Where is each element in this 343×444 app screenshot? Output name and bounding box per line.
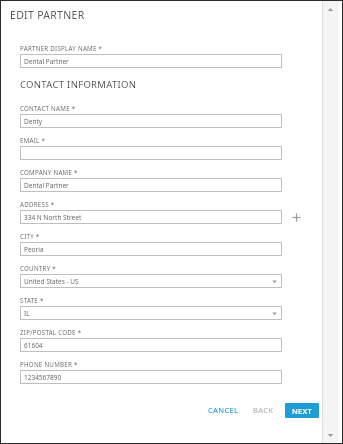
button[interactable]: 334 N North Street — [20, 210, 282, 224]
button[interactable]: Peoria — [20, 242, 282, 256]
button[interactable]: Dental Partner — [20, 178, 282, 192]
button[interactable]: Scroll down — [322, 427, 338, 443]
button[interactable]: IL — [20, 306, 282, 320]
staticText: STATE * — [20, 296, 44, 304]
staticText: COMPANY NAME * — [20, 168, 78, 176]
staticText: CONTACT NAME * — [20, 104, 76, 112]
staticText: Denty — [24, 117, 43, 126]
staticText: NEXT — [292, 406, 312, 416]
staticText: EMAIL * — [20, 136, 46, 144]
staticText: 1234567890 — [24, 373, 62, 382]
staticText: ZIP/POSTAL CODE * — [20, 328, 82, 336]
button[interactable]: 61604 — [20, 338, 282, 352]
staticText: United States - US — [24, 277, 79, 286]
button[interactable]: BACK — [248, 401, 279, 419]
staticText: 61604 — [24, 341, 43, 350]
button[interactable]: 1234567890 — [20, 370, 282, 384]
button[interactable]: CANCEL — [203, 401, 244, 419]
staticText: CITY * — [20, 232, 40, 240]
staticText: PHONE NUMBER * — [20, 360, 78, 368]
staticText: Dental Partner — [24, 57, 69, 66]
staticText: IL — [24, 309, 30, 318]
button[interactable]: Dental Partner — [20, 54, 282, 68]
staticText: Peoria — [24, 245, 44, 254]
button[interactable]: Add address — [289, 210, 303, 224]
staticText: EDIT PARTNER — [10, 8, 85, 22]
button[interactable]: Denty — [20, 114, 282, 128]
staticText: Dental Partner — [24, 181, 69, 190]
button[interactable]: NEXT — [285, 403, 319, 418]
button[interactable] — [20, 146, 282, 160]
staticText: ADDRESS * — [20, 200, 55, 208]
button[interactable]: Scroll up — [322, 1, 338, 17]
staticText: COUNTRY * — [20, 264, 56, 272]
staticText: CONTACT INFORMATION — [20, 78, 137, 91]
staticText: BACK — [253, 405, 274, 415]
staticText: CANCEL — [208, 405, 239, 415]
staticText: PARTNER DISPLAY NAME * — [20, 44, 103, 52]
staticText: 334 N North Street — [24, 213, 82, 222]
button[interactable]: United States - US — [20, 274, 282, 288]
